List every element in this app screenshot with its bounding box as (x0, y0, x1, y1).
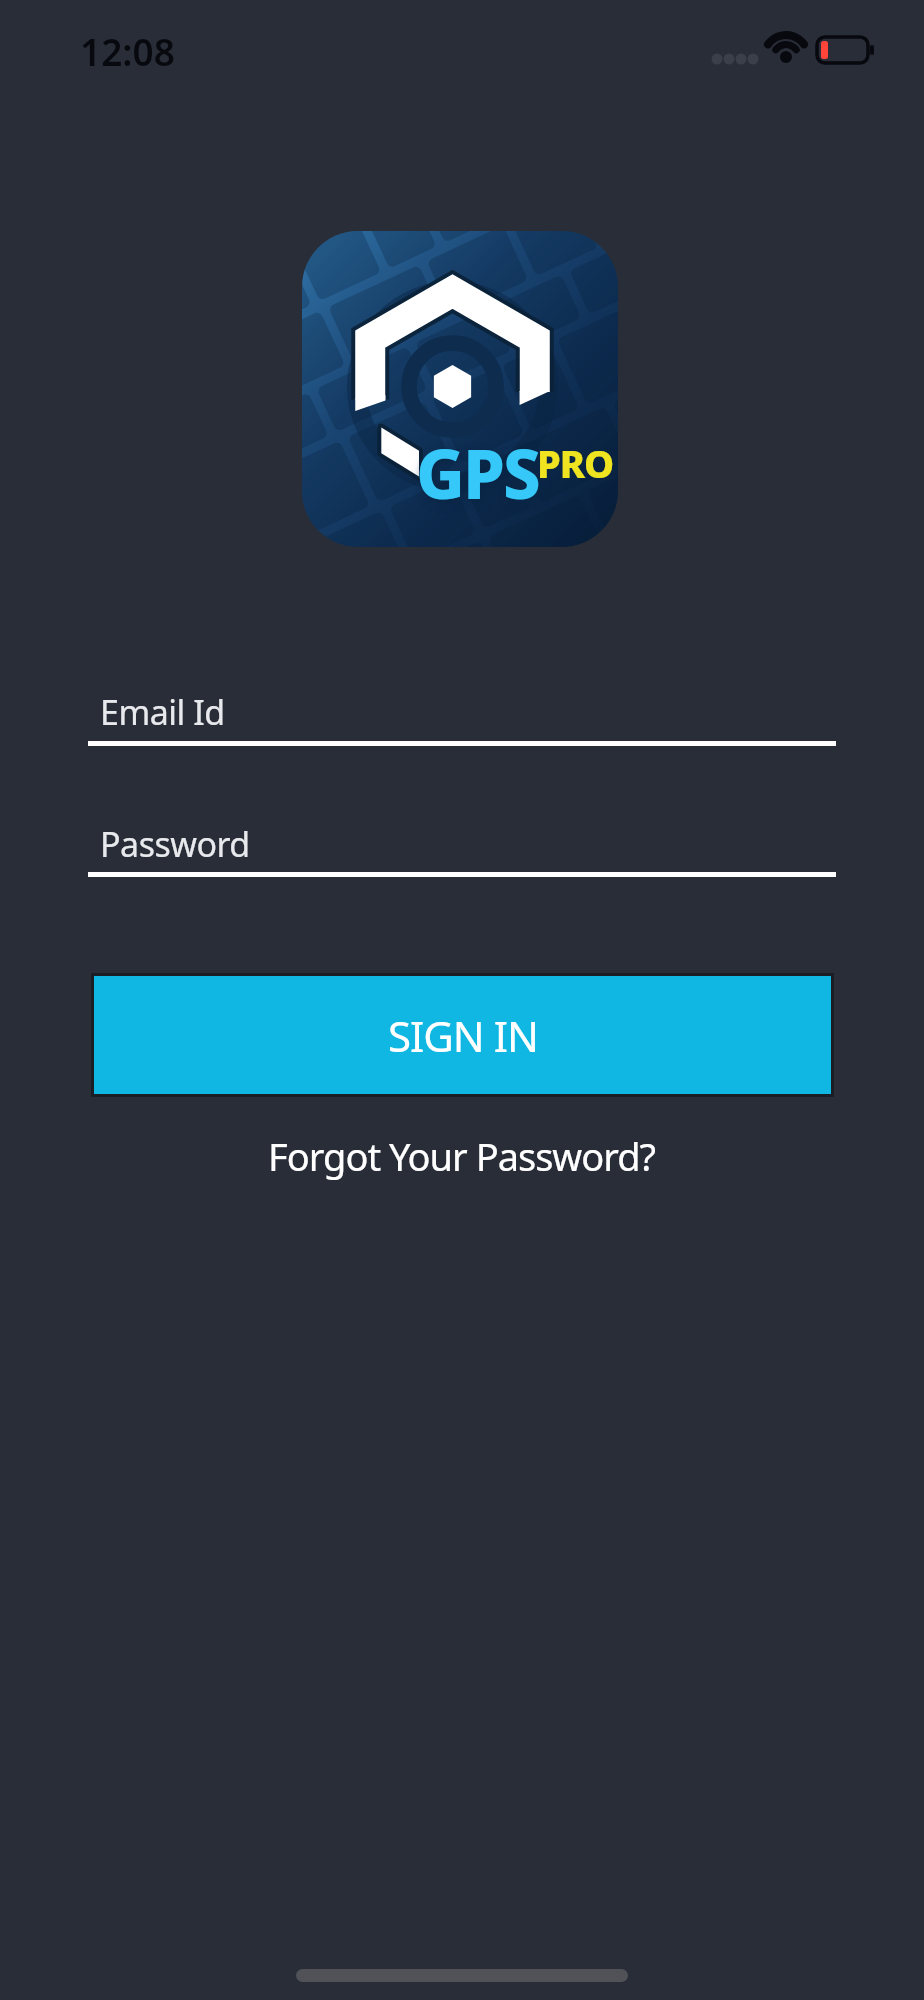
staticText: SIGN IN (388, 1007, 538, 1064)
button[interactable]: Forgot Your Password? (268, 1130, 656, 1182)
button[interactable]: Email Id (88, 680, 836, 746)
button[interactable]: Password (88, 812, 836, 877)
staticText: Password (100, 821, 250, 867)
button[interactable]: SIGN IN (91, 973, 834, 1097)
staticText: PRO (537, 437, 614, 489)
staticText: 12:08 (80, 26, 175, 76)
staticText: Email Id (100, 689, 225, 735)
staticText: GPS (416, 427, 539, 518)
